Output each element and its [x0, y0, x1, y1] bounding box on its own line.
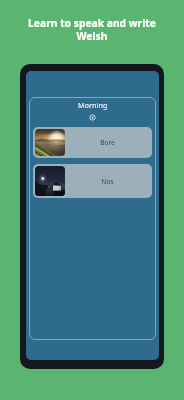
staticText: Learn to speak and write Welsh [28, 16, 156, 43]
button[interactable]: Play [89, 114, 96, 121]
button[interactable]: Bore [33, 127, 152, 158]
staticText: Bore [65, 138, 150, 147]
staticText: Nos [65, 177, 150, 186]
staticText: Morning [78, 100, 108, 110]
button[interactable]: Nos [33, 164, 152, 198]
